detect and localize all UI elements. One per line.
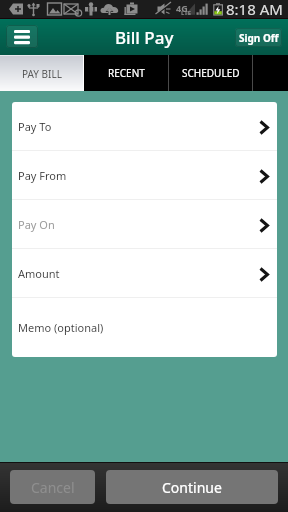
- staticText: Pay On: [18, 217, 55, 232]
- button[interactable]: Amount: [12, 249, 277, 297]
- button[interactable]: Pay To: [12, 102, 277, 150]
- staticText: Amount: [18, 266, 60, 281]
- button[interactable]: SCHEDULED: [169, 55, 252, 91]
- button[interactable]: Cancel: [10, 470, 95, 504]
- staticText: Pay From: [18, 168, 67, 183]
- button[interactable]: Sign Off: [235, 28, 282, 47]
- staticText: Memo (optional): [18, 320, 104, 335]
- button[interactable]: Pay On: [12, 200, 277, 248]
- button[interactable]: Pay From: [12, 151, 277, 199]
- button[interactable]: Continue: [106, 470, 278, 504]
- staticText: Continue: [162, 478, 222, 497]
- staticText: Sign Off: [239, 31, 279, 45]
- staticText: Cancel: [31, 478, 75, 497]
- staticText: 8:18 AM: [226, 0, 283, 18]
- button[interactable]: Memo (optional): [12, 298, 277, 357]
- staticText: Pay To: [18, 119, 52, 134]
- staticText: RECENT: [108, 66, 145, 80]
- button[interactable]: PAY BILL: [0, 55, 83, 91]
- staticText: 4G: [176, 2, 188, 14]
- staticText: Bill Pay: [115, 26, 174, 49]
- button[interactable]: Open navigation menu: [6, 25, 38, 48]
- button[interactable]: RECENT: [84, 55, 168, 91]
- staticText: PAY BILL: [22, 67, 62, 81]
- staticText: SCHEDULED: [182, 66, 240, 80]
- staticText: LTE: [181, 9, 192, 17]
